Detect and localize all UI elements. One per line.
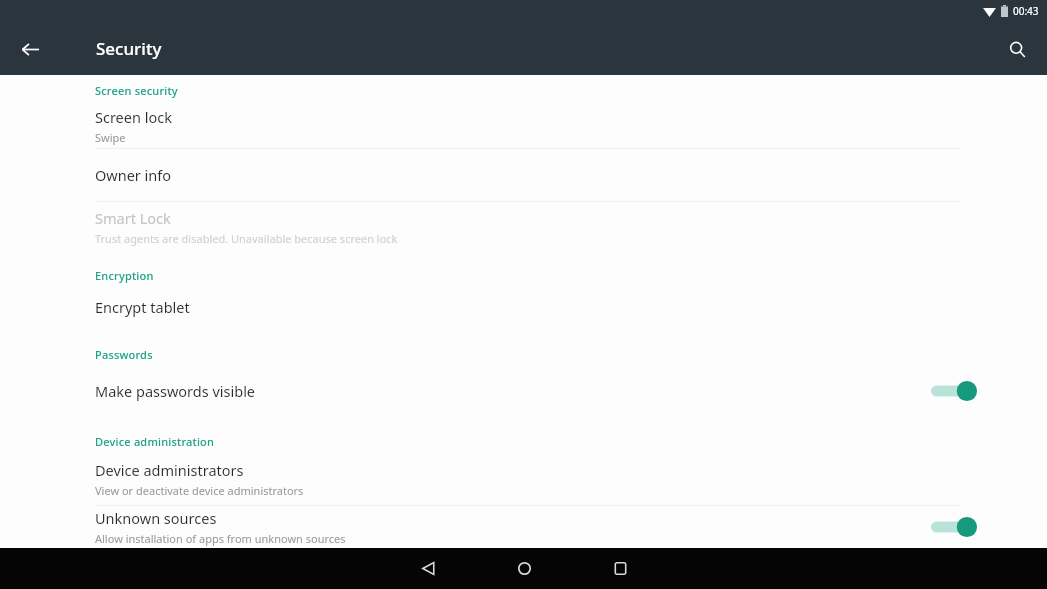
staticText: Unknown sources: [95, 508, 217, 528]
staticText: Trust agents are disabled. Unavailable b…: [95, 231, 398, 246]
staticText: Screen lock: [95, 107, 172, 127]
staticText: Owner info: [95, 165, 172, 185]
staticText: Passwords: [95, 347, 153, 362]
staticText: Make passwords visible: [95, 381, 256, 401]
staticText: Screen security: [95, 83, 178, 98]
staticText: Encryption: [95, 268, 154, 283]
button[interactable]: Recent apps: [572, 548, 668, 589]
button[interactable]: Back: [8, 27, 52, 71]
button[interactable]: Unknown sources: [0, 506, 1047, 548]
button[interactable]: Smart Lock: [0, 202, 1047, 252]
button[interactable]: Search: [995, 27, 1039, 71]
button[interactable]: Screen lock: [0, 104, 1047, 148]
staticText: Smart Lock: [95, 208, 171, 228]
button[interactable]: Owner info: [0, 149, 1047, 201]
staticText: Device administrators: [95, 460, 244, 480]
staticText: Device administration: [95, 434, 215, 449]
staticText: View or deactivate device administrators: [95, 483, 304, 498]
staticText: Allow installation of apps from unknown …: [95, 531, 346, 546]
staticText: Swipe: [95, 130, 126, 145]
staticText: 00:43: [1013, 4, 1039, 18]
staticText: Encrypt tablet: [95, 297, 190, 317]
button[interactable]: Make passwords visible: [0, 370, 1047, 412]
button[interactable]: Encrypt tablet: [0, 291, 1047, 323]
button[interactable]: Home: [476, 548, 572, 589]
button[interactable]: Back: [380, 548, 476, 589]
button[interactable]: Device administrators: [0, 457, 1047, 501]
staticText: Security: [96, 37, 162, 60]
